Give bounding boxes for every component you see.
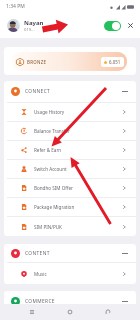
button[interactable]: Recent apps: [26, 306, 38, 318]
button[interactable]: Home: [64, 306, 76, 318]
staticText: 019...: [24, 27, 35, 33]
staticText: Balance Transfer: [34, 128, 70, 134]
button[interactable]: BRONZE: [4, 47, 136, 75]
button[interactable]: Balance Transfer: [4, 122, 136, 140]
staticText: BRONZE: [27, 59, 47, 65]
button[interactable]: Bondho SIM Offer: [4, 179, 136, 197]
staticText: Switch Account: [34, 166, 67, 172]
button[interactable]: Profile photo: [7, 19, 20, 32]
button[interactable]: Close: [126, 21, 135, 30]
staticText: 1:34 PM: [6, 3, 25, 10]
button[interactable]: Music: [4, 263, 136, 284]
staticText: Bondho SIM Offer: [34, 185, 73, 191]
staticText: Refer & Earn: [34, 147, 62, 153]
staticText: Usage History: [34, 109, 65, 115]
staticText: CONTENT: [25, 250, 50, 257]
staticText: Package Migration: [34, 204, 75, 210]
staticText: COMMERCE: [25, 298, 55, 305]
button[interactable]: COMMERCE: [4, 291, 136, 311]
staticText: 6,051: [109, 59, 121, 65]
button[interactable]: CONTENT: [4, 244, 136, 262]
staticText: Nayan: [24, 19, 44, 27]
button[interactable]: Back: [102, 306, 114, 318]
staticText: CONNECT: [25, 88, 51, 95]
button[interactable]: Refer & Earn: [4, 141, 136, 159]
button[interactable]: CONNECT: [4, 81, 136, 102]
button[interactable]: Internet toggle: [104, 21, 121, 31]
staticText: SIM PIN/PUK: [34, 224, 62, 230]
staticText: Music: [34, 271, 47, 277]
button[interactable]: Switch Account: [4, 160, 136, 178]
button[interactable]: Package Migration: [4, 198, 136, 216]
button[interactable]: Usage History: [4, 103, 136, 121]
button[interactable]: SIM PIN/PUK: [4, 217, 136, 236]
